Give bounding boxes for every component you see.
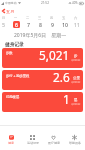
staticText: 日 (2, 16, 6, 20)
button[interactable]: 二 (22, 15, 34, 29)
button[interactable]: 智能设备 (64, 126, 85, 150)
staticText: 今日目标 (71, 59, 81, 62)
staticText: 智能设备 (69, 141, 81, 145)
button[interactable]: 步数 (2, 48, 83, 68)
button[interactable]: 医疗健康 (43, 126, 64, 150)
button[interactable]: 五 (58, 15, 70, 29)
button[interactable]: 一 (10, 15, 22, 29)
staticText: 层 (74, 98, 78, 102)
button[interactable]: 步行 + 跑步里程 (2, 70, 83, 90)
staticText: 步 (74, 54, 78, 58)
staticText: 今日目标 (71, 103, 81, 106)
staticText: 中国移动 (5, 1, 17, 5)
staticText: 11 (74, 21, 80, 28)
staticText: 5 (2, 21, 5, 28)
staticText: 步行 + 跑步里程 (6, 73, 30, 78)
staticText: 6 (15, 21, 18, 28)
staticText: 1 (63, 92, 70, 107)
staticText: 9 (51, 21, 54, 28)
button[interactable]: 三 (34, 15, 46, 29)
staticText: 健身记录 (5, 41, 24, 47)
staticText: 2019年5月6日 星期一 (14, 32, 67, 38)
staticText: 21:52 (41, 1, 49, 5)
staticText: 五月 (6, 9, 15, 14)
staticText: 二 (26, 16, 30, 20)
staticText: 公里 (73, 76, 80, 80)
staticText: 医疗健康 (48, 141, 60, 145)
staticText: 五 (62, 16, 66, 20)
staticText: 已爬楼层 (6, 95, 20, 99)
staticText: 运动记录 (27, 141, 39, 145)
staticText: 5,021 (39, 48, 70, 63)
staticText: 8 (39, 21, 42, 28)
staticText: 2.6 (53, 70, 70, 85)
staticText: 步数 (6, 51, 13, 55)
button[interactable]: 运动记录 (22, 126, 43, 150)
staticText: 四 (50, 16, 54, 20)
button[interactable]: 六 (70, 15, 82, 29)
staticText: 7 (27, 21, 30, 28)
staticText: 三 (38, 16, 42, 20)
button[interactable]: 已爬楼层 (2, 92, 83, 112)
button[interactable]: 日 (0, 15, 10, 29)
staticText: 10 (62, 21, 68, 28)
staticText: 40% (72, 1, 78, 5)
button[interactable]: 健康 (0, 126, 22, 150)
staticText: 一 (14, 16, 18, 20)
staticText: 健康 (8, 141, 14, 145)
staticText: 今日目标 (71, 81, 81, 84)
button[interactable]: 四 (46, 15, 58, 29)
button[interactable]: Back (0, 7, 18, 15)
staticText: 六 (74, 16, 78, 20)
